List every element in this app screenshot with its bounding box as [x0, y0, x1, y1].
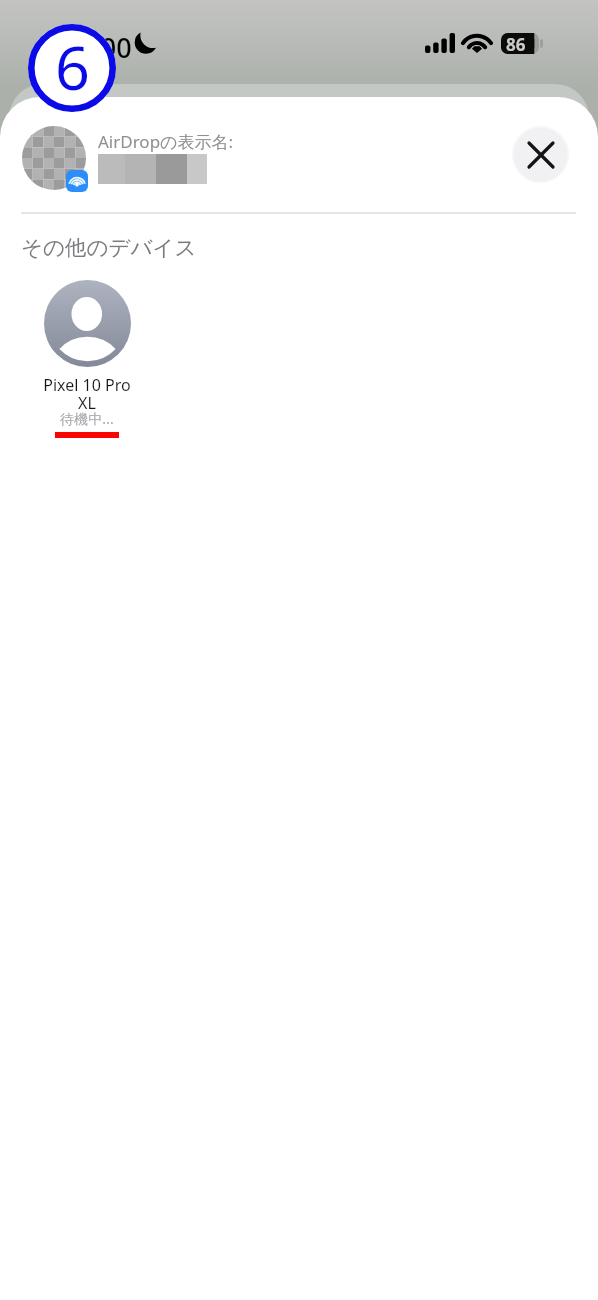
staticText: 6: [55, 25, 90, 108]
staticText: AirDropの表示名:: [98, 130, 234, 153]
staticText: 待機中...: [39, 409, 135, 428]
button[interactable]: Close: [512, 126, 569, 183]
staticText: その他のデバイス: [21, 234, 197, 261]
staticText: Pixel 10 Pro XL: [39, 374, 135, 414]
staticText: 86: [506, 33, 526, 54]
staticText: 9:00: [78, 29, 132, 66]
button[interactable]: Pixel 10 Pro XL: [39, 280, 135, 439]
